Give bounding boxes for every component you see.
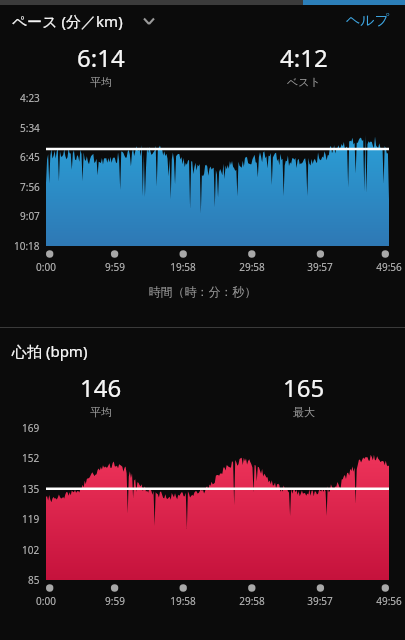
staticText: 4:12 [280,41,328,74]
staticText: 102 [22,543,40,557]
staticText: 10:18 [14,239,40,253]
staticText: 152 [22,451,40,465]
staticText: 時間（時：分：秒） [0,284,405,299]
staticText: 6:45 [20,150,40,164]
staticText: 19:58 [161,594,205,608]
staticText: 9:59 [93,594,137,608]
staticText: 49:56 [367,260,405,274]
staticText: 5:34 [20,121,40,135]
staticText: 169 [22,421,40,435]
staticText: 最大 [293,405,315,419]
staticText: 7:56 [20,180,40,194]
staticText: 165 [283,371,325,404]
button[interactable]: 心拍 (bpm) [0,341,405,361]
staticText: 19:58 [161,260,205,274]
staticText: 146 [80,371,122,404]
staticText: 49:56 [367,594,405,608]
staticText: 平均 [90,75,112,89]
staticText: 135 [22,482,40,496]
staticText: ペース (分／km) [12,11,123,31]
other: Change metric [141,13,157,29]
staticText: 0:00 [24,260,68,274]
staticText: 6:14 [77,41,125,74]
staticText: 9:07 [20,209,40,223]
staticText: 0:00 [24,594,68,608]
button[interactable]: ヘルプ [342,8,393,34]
staticText: 39:57 [298,260,342,274]
button[interactable]: ペース (分／km) [12,11,161,31]
staticText: ベスト [287,75,321,89]
staticText: 29:58 [230,594,274,608]
staticText: 39:57 [298,594,342,608]
staticText: ヘルプ [346,12,389,30]
staticText: 平均 [90,405,112,419]
staticText: 29:58 [230,260,274,274]
staticText: 4:23 [20,91,40,105]
staticText: 心拍 (bpm) [12,341,88,361]
staticText: 85 [28,573,40,587]
staticText: 9:59 [93,260,137,274]
staticText: 119 [22,512,40,526]
